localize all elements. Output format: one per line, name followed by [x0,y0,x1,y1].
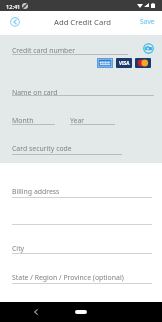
staticText: Name on card [12,88,58,97]
staticText: State / Region / Province (optional) [12,273,124,282]
button[interactable]: Home [69,306,93,318]
staticText: Save [140,17,155,26]
staticText: Card security code [12,144,72,153]
button[interactable]: Back [29,305,43,319]
staticText: Credit card number [12,46,76,55]
staticText: Year [70,116,85,125]
staticText: 12:41 [6,3,21,11]
button[interactable]: Save [137,15,158,28]
staticText: VISA [119,60,130,66]
staticText: Add Credit Card [54,17,111,27]
staticText: Billing address [12,187,60,196]
button[interactable]: Scan card [143,43,154,54]
staticText: City [12,244,25,253]
staticText: Month [12,116,34,125]
button[interactable]: Back [10,17,20,27]
